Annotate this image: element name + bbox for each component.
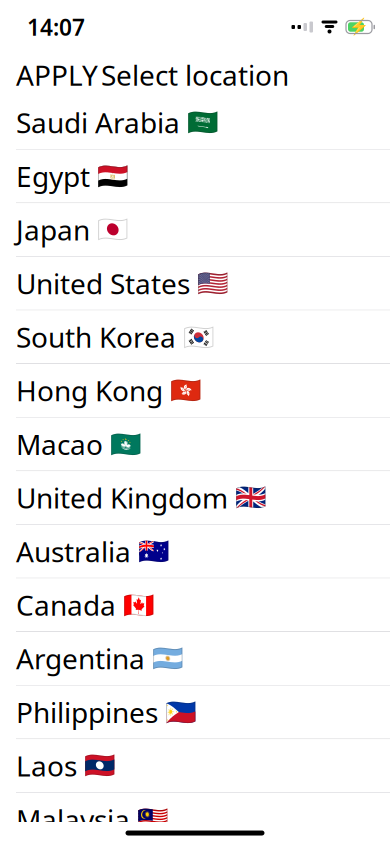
staticText: 🇲🇴 <box>110 430 142 458</box>
staticText: 🇺🇸 <box>197 269 229 298</box>
staticText: Hong Kong <box>16 372 163 409</box>
staticText: 🇲🇾 <box>137 805 169 834</box>
button[interactable]: South Korea <box>0 310 390 364</box>
staticText: 🇱🇦 <box>84 751 116 780</box>
staticText: Australia <box>16 533 131 570</box>
staticText: 🇭🇰 <box>170 376 202 405</box>
button[interactable]: APPLY <box>16 50 98 100</box>
staticText: United Kingdom <box>16 479 228 516</box>
button[interactable]: Canada <box>0 578 390 632</box>
staticText: Malaysia <box>16 801 130 838</box>
staticText: 14:07 <box>27 12 85 42</box>
staticText: 🇸🇦 <box>187 108 219 137</box>
staticText: Philippines <box>16 693 158 731</box>
staticText: 🇨🇦 <box>123 590 155 619</box>
button[interactable]: Japan <box>0 203 390 257</box>
staticText: 🇰🇷 <box>183 322 215 351</box>
staticText: Canada <box>16 586 116 623</box>
staticText: Select location <box>101 56 289 94</box>
staticText: South Korea <box>16 318 176 355</box>
button[interactable]: Argentina <box>0 632 390 686</box>
button[interactable]: Egypt <box>0 150 390 203</box>
button[interactable]: United Kingdom <box>0 471 390 525</box>
button[interactable]: United States <box>0 257 390 310</box>
staticText: Laos <box>16 747 77 784</box>
button[interactable]: Saudi Arabia <box>0 96 390 150</box>
staticText: Macao <box>16 425 103 463</box>
staticText: United States <box>16 265 190 302</box>
staticText: 🇦🇺 <box>138 537 170 566</box>
staticText: Argentina <box>16 640 145 677</box>
button[interactable]: Australia <box>0 525 390 578</box>
staticText: 🇬🇧 <box>235 483 267 512</box>
button[interactable]: Laos <box>0 739 390 793</box>
staticText: APPLY <box>16 56 98 94</box>
staticText: Japan <box>16 211 90 248</box>
staticText: 🇵🇭 <box>165 698 197 726</box>
button[interactable]: Malaysia <box>0 793 390 844</box>
staticText: 🇯🇵 <box>97 215 129 244</box>
staticText: Saudi Arabia <box>16 104 180 141</box>
staticText: ⚡ <box>349 18 369 36</box>
staticText: 🇪🇬 <box>97 162 129 190</box>
button[interactable]: Hong Kong <box>0 364 390 418</box>
button[interactable]: Macao <box>0 418 390 471</box>
button[interactable]: Philippines <box>0 686 390 739</box>
staticText: Egypt <box>16 157 90 195</box>
staticText: 🇦🇷 <box>152 644 184 673</box>
